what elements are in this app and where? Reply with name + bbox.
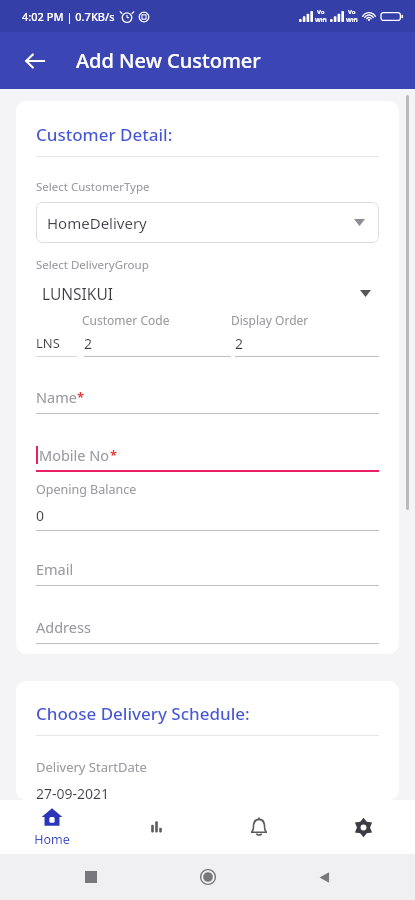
button[interactable]: Mobile No (36, 445, 379, 472)
staticText: 27-09-2021 (36, 784, 110, 800)
button[interactable]: Notifications (217, 800, 301, 854)
staticText: LUNSIKUI (42, 283, 114, 304)
staticText: Delivery StartDate (36, 758, 147, 776)
staticText: Add New Customer (76, 47, 261, 74)
staticText: 0 (36, 506, 45, 525)
staticText: Wifi (346, 16, 358, 24)
button[interactable]: Settings (321, 800, 405, 854)
button[interactable]: Email (36, 559, 379, 586)
staticText: Select CustomerType (36, 179, 150, 195)
button[interactable]: Home (10, 800, 94, 854)
staticText: 2 (235, 334, 244, 353)
button[interactable]: Home (191, 860, 225, 894)
button[interactable]: Reports (114, 800, 198, 854)
staticText: Select DeliveryGroup (36, 257, 149, 273)
staticText: HomeDelivery (47, 213, 147, 233)
staticText: Customer Code (82, 312, 231, 328)
staticText: * (110, 446, 118, 464)
button[interactable]: Back (307, 860, 341, 894)
staticText: Customer Detail: (36, 123, 173, 146)
staticText: Opening Balance (36, 481, 137, 498)
staticText: * (77, 388, 85, 406)
staticText: Email (36, 559, 74, 579)
staticText: 2 (84, 334, 93, 353)
button[interactable]: HomeDelivery (36, 202, 379, 243)
staticText: Mobile No (39, 445, 110, 465)
button[interactable]: Name (36, 387, 379, 414)
staticText: 4:02 PM | 0.7KB/s (22, 9, 115, 24)
staticText: Name (36, 387, 77, 407)
staticText: Vo (348, 8, 356, 16)
button[interactable]: Back (14, 40, 56, 82)
staticText: Home (34, 831, 70, 848)
staticText: Address (36, 617, 91, 637)
button[interactable]: LUNSIKUI (36, 281, 379, 305)
button[interactable]: Recents (74, 860, 108, 894)
staticText: LNS (36, 334, 60, 352)
staticText: Display Order (231, 312, 309, 328)
button[interactable]: Address (36, 617, 379, 644)
staticText: Choose Delivery Schedule: (36, 702, 250, 725)
staticText: Vo (317, 8, 325, 16)
staticText: Wifi (315, 16, 327, 24)
